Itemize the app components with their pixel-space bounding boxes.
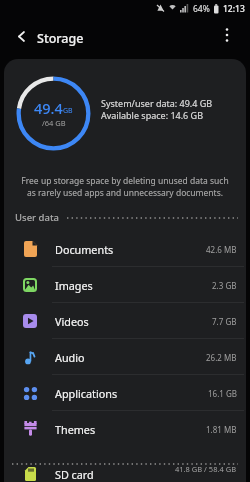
- staticText: System/user data: 49.4 GB: [101, 97, 213, 109]
- staticText: Audio: [55, 350, 85, 365]
- staticText: 64%: [193, 3, 210, 15]
- staticText: 7.7 GB: [212, 316, 237, 327]
- button[interactable]: Applications: [4, 375, 246, 411]
- button[interactable]: Videos: [4, 303, 246, 339]
- button[interactable]: Themes: [4, 411, 246, 447]
- staticText: GB: [63, 106, 73, 116]
- button[interactable]: [215, 23, 239, 47]
- button[interactable]: Images: [4, 267, 246, 303]
- staticText: 26.2 MB: [206, 352, 237, 363]
- staticText: Storage: [37, 30, 84, 47]
- staticText: Free up storage space by deleting unused…: [4, 175, 246, 199]
- staticText: Available space: 14.6 GB: [101, 109, 203, 121]
- button[interactable]: Audio: [4, 339, 246, 375]
- staticText: 49.4: [34, 98, 63, 118]
- staticText: Images: [55, 278, 93, 293]
- staticText: Themes: [55, 422, 96, 437]
- button[interactable]: SD card: [4, 466, 246, 482]
- staticText: /64 GB: [42, 118, 66, 128]
- staticText: 42.6 MB: [206, 244, 237, 255]
- staticText: User data: [15, 211, 59, 224]
- staticText: Documents: [55, 242, 114, 257]
- button[interactable]: [8, 23, 34, 49]
- button[interactable]: Documents: [4, 231, 246, 267]
- staticText: 2.3 GB: [212, 280, 237, 291]
- staticText: Videos: [55, 314, 89, 329]
- staticText: 16.1 GB: [208, 388, 237, 399]
- staticText: 41.8 GB / 58.4 GB: [175, 464, 237, 474]
- staticText: 12:13: [223, 3, 245, 15]
- staticText: SD card: [55, 467, 94, 482]
- staticText: Applications: [55, 386, 118, 401]
- staticText: 1.81 MB: [206, 424, 237, 435]
